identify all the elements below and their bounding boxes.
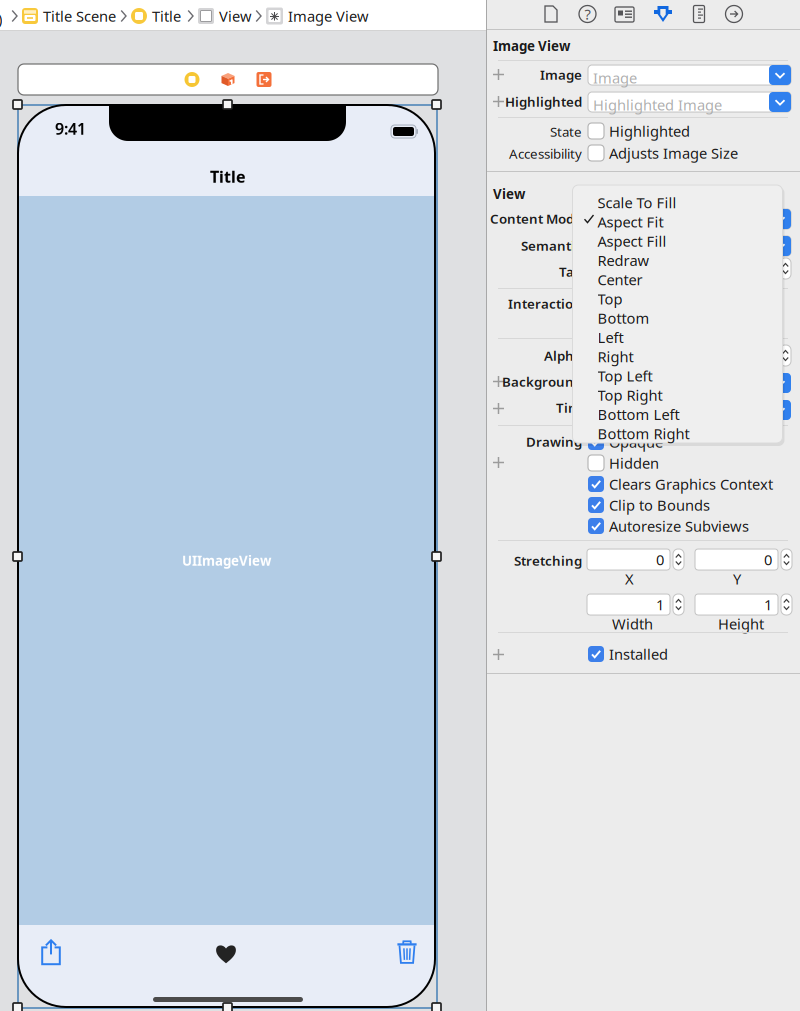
button[interactable]: Title bbox=[131, 6, 181, 26]
button[interactable]: Top Right bbox=[572, 382, 782, 401]
staticText: Opaque bbox=[609, 432, 663, 452]
staticText: Installed bbox=[609, 644, 668, 664]
button[interactable]: Connections inspector bbox=[725, 5, 743, 23]
staticText: Clip to Bounds bbox=[609, 495, 710, 515]
staticText: Height bbox=[718, 614, 764, 633]
staticText: 1 bbox=[656, 595, 664, 614]
staticText: Adjusts Image Size bbox=[609, 143, 738, 163]
staticText: Semantic bbox=[521, 237, 582, 254]
staticText: Title Scene bbox=[43, 6, 116, 26]
button[interactable]: Top Left bbox=[572, 363, 782, 382]
button[interactable]: View controller bbox=[184, 71, 200, 87]
staticText: Highlighted bbox=[505, 93, 582, 110]
button[interactable]: Autoresize Subviews bbox=[588, 517, 749, 535]
button[interactable]: Clears Graphics Context bbox=[588, 475, 773, 493]
staticText: Center bbox=[597, 270, 642, 289]
staticText: X bbox=[625, 569, 634, 588]
button[interactable]: Share bbox=[24, 932, 78, 972]
button[interactable]: Scale To Fill bbox=[572, 190, 782, 209]
staticText: Redraw bbox=[597, 250, 649, 270]
staticText: Image View bbox=[493, 37, 570, 55]
staticText: ) bbox=[0, 9, 2, 28]
staticText: ? bbox=[584, 4, 590, 24]
staticText: State bbox=[550, 123, 582, 140]
button[interactable]: Exit bbox=[256, 71, 272, 87]
staticText: Highlighted Image bbox=[593, 95, 722, 114]
button[interactable]: Delete bbox=[380, 932, 434, 972]
staticText: Highlighted bbox=[609, 121, 690, 141]
staticText: Y bbox=[733, 569, 741, 588]
staticText: Interaction bbox=[508, 295, 582, 312]
staticText: Background bbox=[502, 373, 582, 390]
staticText: Image View bbox=[288, 6, 369, 26]
staticText: 0 bbox=[764, 550, 772, 569]
button[interactable]: Bottom Left bbox=[572, 402, 782, 421]
staticText: Stretching bbox=[514, 552, 582, 569]
staticText: View bbox=[493, 185, 525, 203]
staticText: Top bbox=[597, 289, 622, 308]
staticText: Autoresize Subviews bbox=[609, 516, 749, 536]
staticText: Clears Graphics Context bbox=[609, 474, 773, 494]
button[interactable]: Image View bbox=[266, 6, 369, 26]
staticText: Bottom Right bbox=[597, 424, 689, 443]
staticText: 9:41 bbox=[55, 118, 86, 139]
staticText: Title bbox=[152, 6, 181, 26]
staticText: 1 bbox=[764, 595, 772, 614]
button[interactable]: Opaque bbox=[588, 433, 663, 451]
staticText: Drawing bbox=[526, 433, 582, 450]
button[interactable]: Adjusts Image Size bbox=[588, 144, 738, 162]
button[interactable]: Center bbox=[572, 267, 782, 286]
staticText: Bottom Left bbox=[597, 404, 679, 424]
staticText: Alpha bbox=[544, 347, 582, 364]
button[interactable]: Top bbox=[572, 286, 782, 305]
button[interactable]: Redraw bbox=[572, 248, 782, 267]
staticText: 0 bbox=[656, 550, 664, 569]
staticText: Title bbox=[210, 166, 246, 187]
staticText: Tag bbox=[559, 263, 582, 280]
button[interactable]: Bottom bbox=[572, 305, 782, 324]
button[interactable]: Right bbox=[572, 344, 782, 363]
staticText: Aspect Fill bbox=[597, 231, 666, 251]
staticText: Scale To Fill bbox=[597, 193, 676, 212]
staticText: Tint bbox=[556, 399, 582, 416]
button[interactable]: First responder bbox=[220, 71, 236, 87]
button[interactable]: Left bbox=[572, 325, 782, 344]
button[interactable]: Aspect Fit bbox=[572, 209, 782, 228]
button[interactable]: Installed bbox=[588, 645, 668, 663]
button[interactable]: Highlighted Image bbox=[588, 92, 791, 112]
button[interactable]: Quick help inspector bbox=[579, 5, 596, 23]
button[interactable]: Size inspector bbox=[692, 5, 706, 23]
staticText: Right bbox=[597, 347, 633, 366]
staticText: Top Left bbox=[597, 366, 652, 385]
button[interactable]: Identity inspector bbox=[615, 5, 634, 23]
staticText: Image bbox=[540, 66, 582, 83]
button[interactable]: Title Scene bbox=[22, 6, 116, 26]
staticText: Accessibility bbox=[509, 145, 582, 162]
button[interactable]: Aspect Fill bbox=[572, 228, 782, 247]
button[interactable]: Image bbox=[588, 65, 791, 85]
staticText: View bbox=[219, 6, 252, 26]
staticText: UIImageView bbox=[182, 552, 271, 569]
staticText: Top Right bbox=[597, 385, 662, 405]
staticText: Image bbox=[593, 68, 637, 87]
button[interactable]: Attributes inspector bbox=[653, 4, 673, 24]
staticText: Aspect Fit bbox=[597, 212, 663, 231]
button[interactable]: File inspector bbox=[543, 5, 560, 23]
staticText: Content Mode bbox=[490, 210, 582, 227]
button[interactable]: Clip to Bounds bbox=[588, 496, 710, 514]
button[interactable]: Highlighted bbox=[588, 122, 690, 140]
button[interactable]: View bbox=[198, 6, 252, 26]
button[interactable]: Hidden bbox=[588, 454, 659, 472]
staticText: Width bbox=[612, 614, 653, 633]
button[interactable]: Bottom Right bbox=[572, 421, 782, 440]
staticText: Left bbox=[597, 327, 623, 347]
button[interactable]: Favorite bbox=[199, 934, 253, 974]
staticText: Hidden bbox=[609, 453, 659, 473]
staticText: Bottom bbox=[597, 308, 649, 328]
